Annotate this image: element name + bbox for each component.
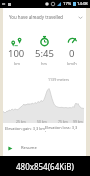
staticText: 99 km xyxy=(73,119,83,124)
button[interactable]: You have already travelled xyxy=(0,11,90,23)
staticText: 75 km xyxy=(58,119,68,124)
staticText: 100 xyxy=(8,47,25,60)
staticText: hrs xyxy=(41,61,48,66)
staticText: km/h xyxy=(67,61,77,66)
button[interactable]: Resume xyxy=(0,141,90,155)
staticText: 14:08 xyxy=(77,1,88,7)
staticText: 5:45 xyxy=(35,47,54,60)
staticText: 25 km xyxy=(16,119,26,124)
staticText: 480x854(64KiB) xyxy=(16,161,74,172)
staticText: 17% xyxy=(63,1,72,7)
staticText: Resume xyxy=(21,145,37,151)
staticText: Elevation loss: 3,3 km xyxy=(45,125,83,132)
staticText: 0 xyxy=(69,47,75,60)
staticText: 50 km xyxy=(37,119,47,124)
staticText: 1139 meters xyxy=(48,77,70,82)
staticText: Elevation gain: 3,3 km xyxy=(5,126,45,131)
staticText: km xyxy=(14,61,20,66)
staticText: You have already travelled xyxy=(9,14,64,20)
